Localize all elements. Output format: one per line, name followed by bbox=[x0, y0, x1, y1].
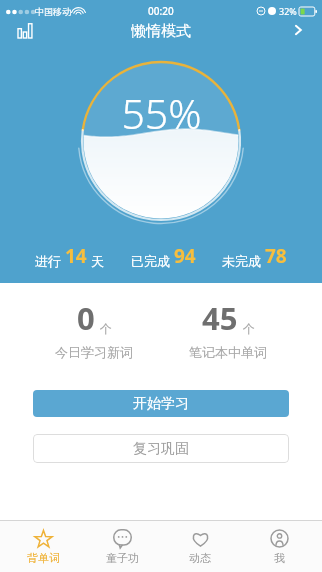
staticText: 复习巩固 bbox=[133, 440, 189, 458]
staticText: 中国移动 bbox=[35, 6, 71, 17]
staticText: 45 bbox=[202, 297, 238, 339]
button[interactable]: 复习巩固 bbox=[33, 434, 289, 463]
button[interactable]: 童子功 bbox=[87, 529, 157, 565]
staticText: 背单词 bbox=[27, 551, 60, 565]
button[interactable]: 我 bbox=[244, 529, 314, 565]
staticText: 32% bbox=[279, 5, 297, 17]
staticText: 00:20 bbox=[148, 4, 174, 18]
staticText: 童子功 bbox=[106, 551, 139, 565]
staticText: 懒惰模式 bbox=[131, 22, 191, 38]
staticText: 动态 bbox=[189, 551, 211, 565]
staticText: 我 bbox=[274, 551, 285, 565]
staticText: 55% bbox=[121, 85, 202, 141]
button[interactable]: 动态 bbox=[165, 529, 235, 565]
staticText: 已完成 bbox=[131, 253, 170, 269]
staticText: 未完成 bbox=[222, 253, 261, 269]
staticText: 今日学习新词 bbox=[55, 344, 133, 360]
button[interactable]: 开始学习 bbox=[33, 390, 289, 417]
staticText: 94 bbox=[174, 243, 196, 269]
staticText: 开始学习 bbox=[133, 395, 189, 413]
staticText: 笔记本中单词 bbox=[189, 344, 267, 360]
staticText: 天 bbox=[91, 253, 104, 269]
staticText: 个 bbox=[100, 321, 112, 336]
staticText: 14 bbox=[65, 243, 87, 269]
staticText: 个 bbox=[243, 321, 255, 336]
button[interactable]: Statistics bbox=[10, 22, 42, 38]
staticText: 进行 bbox=[35, 253, 61, 269]
staticText: 78 bbox=[265, 243, 287, 269]
button[interactable]: More bbox=[282, 22, 314, 38]
button[interactable]: 背单词 bbox=[8, 529, 78, 565]
staticText: 0 bbox=[77, 297, 95, 339]
